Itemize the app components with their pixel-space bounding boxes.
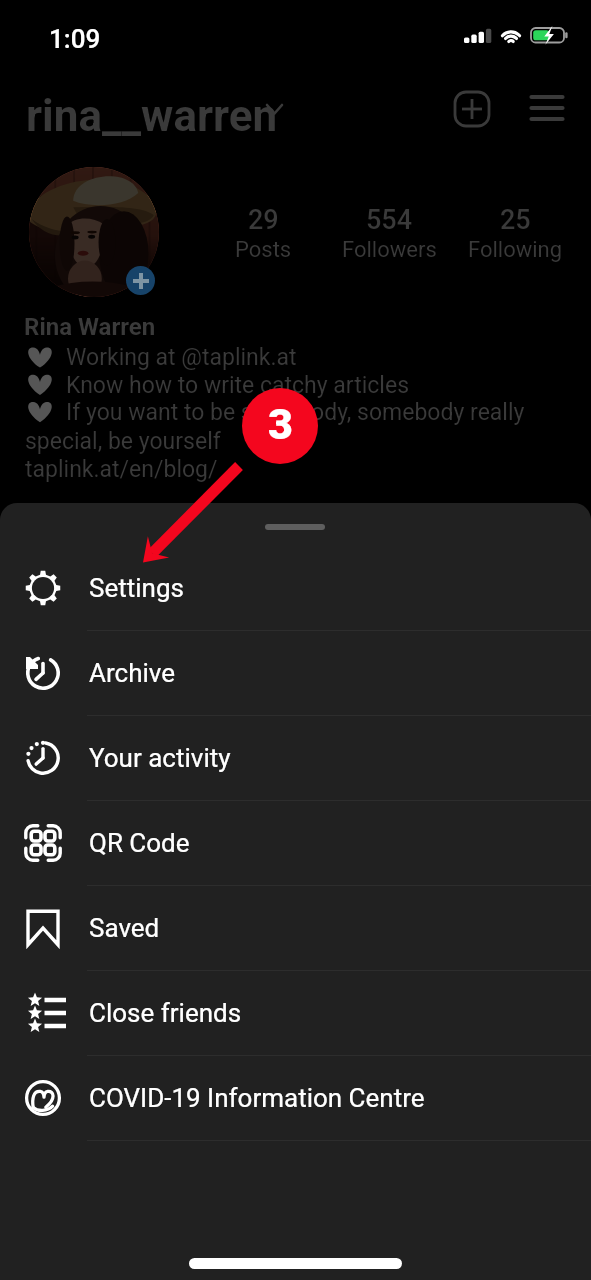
button[interactable]: Profile photo [29,167,159,297]
staticText: 25 [500,204,531,236]
staticText: Close friends [89,998,242,1028]
staticText: Rina Warren [24,313,156,341]
button[interactable]: 554 [319,204,459,263]
button[interactable]: COVID-19 Information Centre [0,1056,591,1140]
staticText: 1:09 [49,24,101,54]
staticText: QR Code [89,828,190,858]
button[interactable]: QR Code [0,801,591,885]
staticText: Saved [89,913,160,943]
staticText: Following [468,237,563,263]
button[interactable]: Switch account [262,94,294,126]
staticText: Working at @taplink.at Know how to write… [66,344,525,425]
staticText: COVID-19 Information Centre [89,1083,425,1113]
button[interactable]: Menu [525,88,569,128]
staticText: Followers [342,237,437,263]
button[interactable]: Settings [0,546,591,630]
staticText: Settings [89,573,184,603]
button[interactable]: Add to story [126,266,155,295]
staticText: 554 [366,204,413,236]
button[interactable]: 25 [445,204,585,263]
staticText: Your activity [89,743,231,773]
button[interactable]: Close friends [0,971,591,1055]
staticText: 3 [268,399,293,449]
button[interactable]: New post [449,86,495,132]
button[interactable]: Archive [0,631,591,715]
staticText: 29 [248,204,279,236]
staticText: Archive [89,658,175,688]
button[interactable]: Your activity [0,716,591,800]
staticText: Posts [235,237,292,263]
button[interactable]: 29 [193,204,333,263]
staticText: rina__warren [26,90,278,142]
staticText: special, be yourself taplink.at/en/blog/ [25,428,221,482]
button[interactable]: Saved [0,886,591,970]
